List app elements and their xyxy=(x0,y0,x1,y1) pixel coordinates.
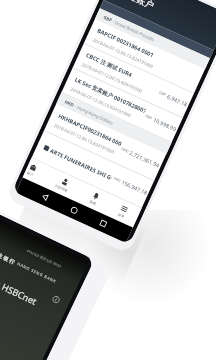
button[interactable]: 提醒 xyxy=(89,191,101,206)
staticText: HKD xyxy=(113,175,122,183)
button[interactable]: 付款转账 xyxy=(54,176,72,193)
staticText: CBCC 注 测试 EUR4 xyxy=(85,51,133,79)
staticText: HKD xyxy=(121,146,130,154)
staticText: 2,721,361.94 xyxy=(128,149,161,169)
staticText: 现金账户 xyxy=(119,0,156,11)
staticText: GBP xyxy=(144,113,154,121)
staticText: 菜单 xyxy=(117,212,125,219)
staticText: 付款转账 xyxy=(54,184,69,193)
staticText: HANG SENG BANK xyxy=(16,261,57,284)
staticText: LK Sec 竞卖账户 001078280073 xyxy=(73,76,147,115)
button[interactable]: BAPCIF 00231864 0001 xyxy=(84,19,205,94)
staticText: ARTS FUNERAIRES SHI GUADALAJ xyxy=(49,147,113,182)
button[interactable]: 菜单 xyxy=(117,204,129,219)
staticText: BAPCIF 00231864 0001 xyxy=(96,26,155,59)
button[interactable] xyxy=(99,219,108,228)
staticText: 提醒 xyxy=(89,200,97,206)
button[interactable] xyxy=(70,206,79,215)
button[interactable] xyxy=(40,192,50,202)
staticText: 恒 生 银 行 xyxy=(0,248,16,265)
button[interactable]: CBCC 注 测试 EUR4 xyxy=(72,44,194,118)
staticText: - Hong Kong Dollars xyxy=(73,103,115,126)
button[interactable]: ARTS FUNERAIRES SHI GUADALAJ xyxy=(31,131,154,208)
button[interactable]: 恒生 HSBCnet xyxy=(0,271,39,307)
button[interactable]: 账户 xyxy=(26,163,38,177)
staticText: 4191023 四月七日 09:23 xyxy=(26,248,62,269)
staticText: 156,947.18 xyxy=(120,178,149,196)
staticText: 2018-04-07-12.00.13.824191000 xyxy=(92,36,155,69)
staticText: 账户 xyxy=(26,171,34,177)
staticText: 10,998.99 xyxy=(152,116,178,132)
button[interactable] xyxy=(51,295,61,304)
staticText: 6,947.18 xyxy=(166,92,189,108)
staticText: GBP xyxy=(102,14,113,23)
button[interactable]: HKHBAPCIF00231864 0001 xyxy=(44,104,166,181)
staticText: HKHBAPCIF00231864 0001 xyxy=(57,112,123,148)
staticText: 2018-04-07-12.00.13.824191000 xyxy=(53,122,116,155)
staticText: GBP xyxy=(158,90,168,98)
staticText: 2018-04-07-12.00.13.824191000 xyxy=(81,61,143,94)
button[interactable]: LK Sec 竞卖账户 001078280073 xyxy=(61,68,183,143)
staticText: 2018-04-07-12.00.13.824191000 xyxy=(70,86,132,118)
staticText: HKD xyxy=(64,98,75,108)
staticText: - Great British Pounds xyxy=(111,17,156,42)
